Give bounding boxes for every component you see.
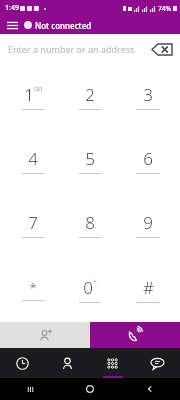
staticText: Enter a number or an address xyxy=(8,43,135,55)
staticText: oo xyxy=(34,84,43,94)
staticText: * xyxy=(29,279,37,297)
button[interactable]: Home xyxy=(60,378,120,400)
button[interactable]: 2 xyxy=(65,64,115,128)
button[interactable]: 6 xyxy=(123,128,173,192)
button[interactable]: Recent apps xyxy=(0,378,60,400)
button[interactable]: Call xyxy=(90,322,180,348)
staticText: Not connected xyxy=(35,20,92,31)
button[interactable]: Add contact xyxy=(0,322,90,348)
staticText: 0 xyxy=(83,276,93,299)
button[interactable]: 3 xyxy=(123,64,173,128)
button[interactable]: 1 xyxy=(8,64,58,128)
staticText: 9 xyxy=(143,211,153,234)
button[interactable]: Back xyxy=(120,378,180,400)
staticText: 2 xyxy=(85,83,95,106)
staticText: 3 xyxy=(143,83,153,106)
button[interactable]: Keypad xyxy=(90,348,135,378)
staticText: 5 xyxy=(85,147,95,170)
staticText: 6 xyxy=(143,147,153,170)
button[interactable]: Enter a number or an address xyxy=(0,34,180,64)
button[interactable]: Recents xyxy=(0,348,45,378)
staticText: 1 xyxy=(24,83,34,106)
button[interactable]: 9 xyxy=(123,192,173,257)
staticText: # xyxy=(143,276,154,299)
button[interactable]: Messages xyxy=(135,348,180,378)
staticText: + xyxy=(93,277,97,287)
button[interactable]: 7 xyxy=(8,192,58,257)
button[interactable]: 5 xyxy=(65,128,115,192)
staticText: 7 xyxy=(28,211,38,234)
staticText: 8 xyxy=(85,211,95,234)
button[interactable]: 4 xyxy=(8,128,58,192)
button[interactable]: # xyxy=(123,257,173,322)
staticText: 4 xyxy=(28,147,38,170)
button[interactable]: Menu xyxy=(5,18,20,33)
button[interactable]: 8 xyxy=(65,192,115,257)
button[interactable]: Backspace xyxy=(150,41,174,57)
button[interactable]: Contacts xyxy=(45,348,90,378)
button[interactable]: 0 xyxy=(65,257,115,322)
staticText: 74% xyxy=(158,4,171,13)
staticText: 1:49 xyxy=(5,3,19,13)
button[interactable]: * xyxy=(8,257,58,322)
